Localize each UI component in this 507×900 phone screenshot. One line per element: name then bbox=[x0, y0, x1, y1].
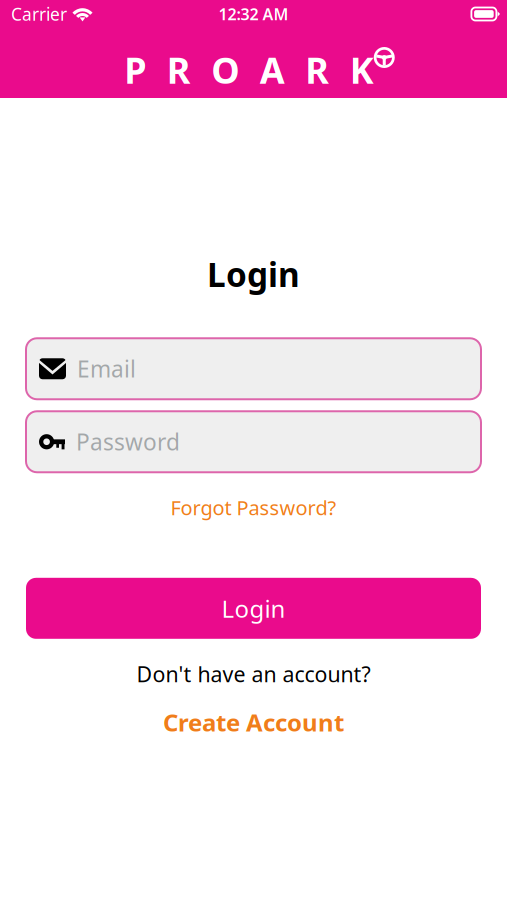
staticText: Password bbox=[76, 427, 180, 457]
staticText: Login bbox=[221, 592, 285, 624]
button[interactable]: Login bbox=[26, 578, 481, 639]
staticText: Forgot Password? bbox=[170, 494, 336, 521]
staticText: Email bbox=[77, 354, 136, 384]
button[interactable]: Forgot Password? bbox=[170, 494, 336, 521]
staticText: Login bbox=[207, 252, 300, 296]
staticText: Don't have an account? bbox=[136, 660, 370, 688]
staticText: Carrier bbox=[11, 2, 67, 25]
staticText: 12:32 AM bbox=[218, 3, 288, 25]
button[interactable]: Create Account bbox=[163, 706, 344, 738]
staticText: Create Account bbox=[163, 706, 344, 738]
staticText: PROARK bbox=[124, 46, 374, 94]
